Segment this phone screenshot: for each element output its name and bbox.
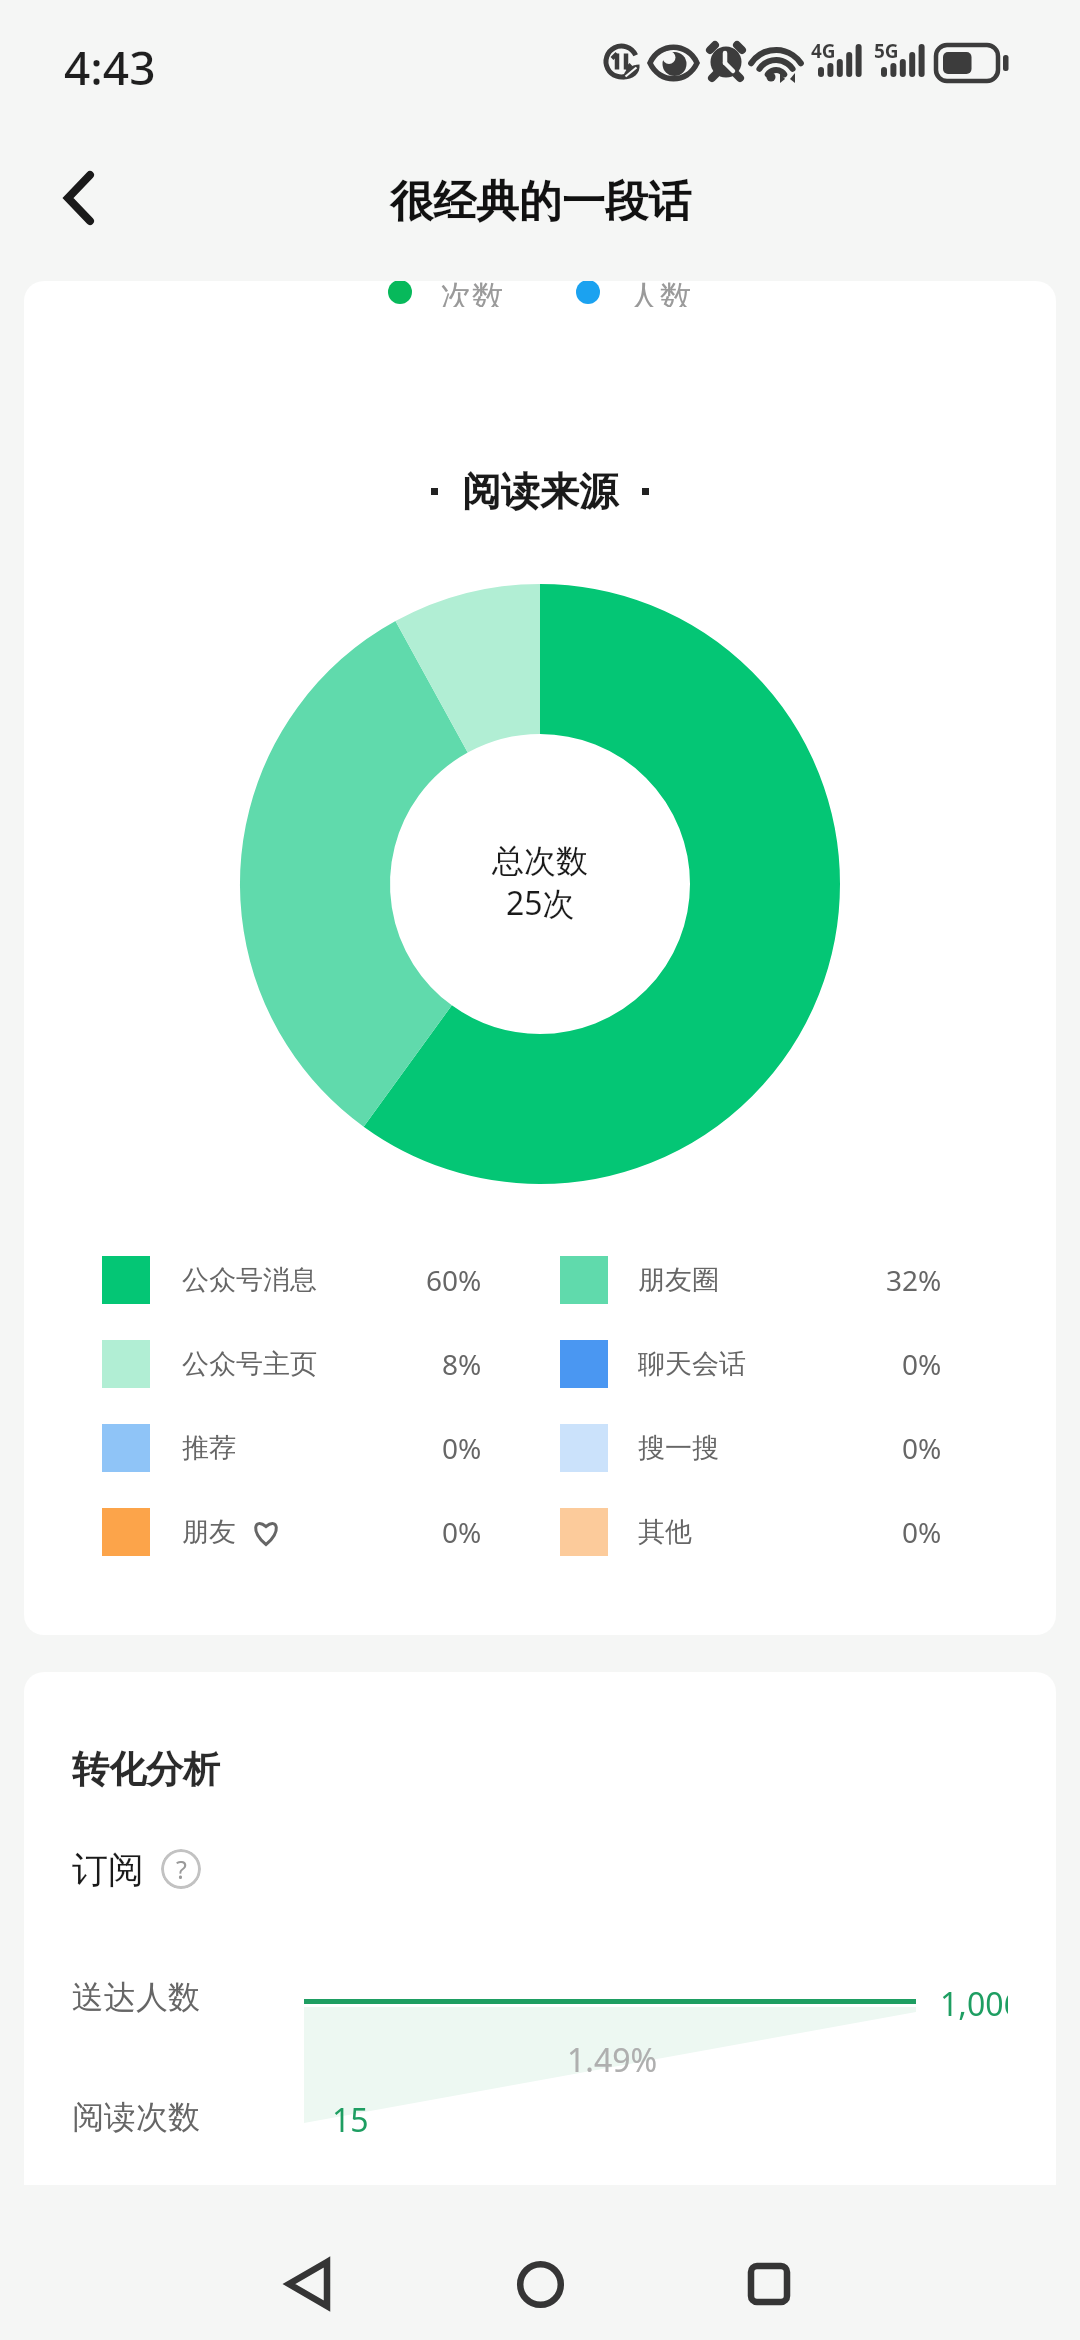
staticText: 1.49% bbox=[567, 2038, 658, 2082]
staticText: 0% bbox=[902, 1345, 942, 1383]
staticText: 次数 bbox=[440, 281, 504, 307]
staticText: 4:43 bbox=[64, 36, 156, 99]
staticText: 朋友圈 bbox=[638, 1263, 719, 1297]
button[interactable]: Home bbox=[495, 2239, 585, 2329]
staticText: 60% bbox=[426, 1261, 482, 1299]
staticText: 5G bbox=[874, 38, 899, 64]
staticText: 阅读来源 bbox=[462, 467, 618, 516]
staticText: 0% bbox=[902, 1513, 942, 1551]
button[interactable]: 朋友 bbox=[102, 1490, 482, 1574]
staticText: 0% bbox=[442, 1429, 482, 1467]
button[interactable]: 推荐 bbox=[102, 1406, 482, 1490]
staticText: 25次 bbox=[506, 881, 575, 925]
staticText: 很经典的一段话 bbox=[390, 175, 691, 229]
staticText: 转化分析 bbox=[72, 1746, 220, 1793]
staticText: 其他 bbox=[638, 1515, 692, 1549]
staticText: ? bbox=[176, 1852, 187, 1886]
button[interactable]: Help bbox=[161, 1849, 201, 1889]
button[interactable]: 其他 bbox=[560, 1490, 942, 1574]
button[interactable]: 聊天会话 bbox=[560, 1322, 942, 1406]
staticText: 推荐 bbox=[182, 1431, 236, 1465]
staticText: 朋友 bbox=[182, 1515, 236, 1549]
staticText: 0% bbox=[902, 1429, 942, 1467]
staticText: 8% bbox=[442, 1345, 482, 1383]
staticText: 搜一搜 bbox=[638, 1431, 719, 1465]
staticText: 32% bbox=[886, 1261, 942, 1299]
staticText: 1,006 bbox=[940, 1982, 1008, 2026]
staticText: 订阅 bbox=[72, 1847, 144, 1892]
button[interactable]: 公众号消息 bbox=[102, 1238, 482, 1322]
staticText: 聊天会话 bbox=[638, 1347, 746, 1381]
staticText: 公众号消息 bbox=[182, 1263, 317, 1297]
staticText: 公众号主页 bbox=[182, 1347, 317, 1381]
staticText: 送达人数 bbox=[72, 1977, 200, 2017]
button[interactable]: Back bbox=[34, 153, 124, 243]
button[interactable]: 公众号主页 bbox=[102, 1322, 482, 1406]
button[interactable]: Recents bbox=[724, 2239, 814, 2329]
staticText: 人数 bbox=[628, 281, 692, 307]
button[interactable]: 朋友圈 bbox=[560, 1238, 942, 1322]
staticText: 阅读次数 bbox=[72, 2097, 200, 2137]
staticText: 4G bbox=[811, 38, 836, 64]
staticText: 15 bbox=[332, 2098, 369, 2142]
button[interactable]: Back bbox=[263, 2239, 353, 2329]
staticText: 0% bbox=[442, 1513, 482, 1551]
staticText: 总次数 bbox=[492, 841, 588, 881]
button[interactable]: 搜一搜 bbox=[560, 1406, 942, 1490]
